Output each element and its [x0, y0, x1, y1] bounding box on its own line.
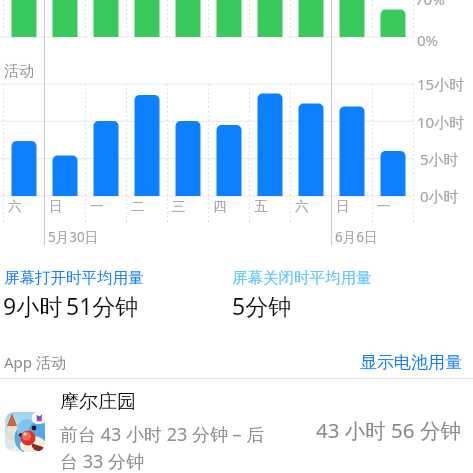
- staticText: 五: [254, 198, 268, 215]
- staticText: 5月30日: [48, 228, 99, 246]
- staticText: 三: [172, 198, 186, 215]
- staticText: 台 33 分钟: [60, 449, 144, 473]
- staticText: 六: [8, 198, 22, 215]
- staticText: 0小时: [420, 186, 459, 206]
- staticText: 日: [336, 198, 350, 215]
- staticText: 0%: [417, 30, 439, 50]
- staticText: 四: [213, 198, 227, 215]
- staticText: 活动: [4, 62, 34, 81]
- staticText: 摩尔庄园: [60, 390, 136, 414]
- staticText: 15小时: [417, 74, 465, 94]
- staticText: 二: [131, 198, 145, 215]
- button[interactable]: 显示电池用量: [302, 342, 462, 382]
- staticText: App 活动: [4, 352, 66, 372]
- staticText: 六: [295, 198, 309, 215]
- staticText: 显示电池用量: [360, 352, 462, 373]
- staticText: 日: [49, 198, 63, 215]
- staticText: 43 小时 56 分钟: [316, 416, 461, 444]
- staticText: 前台 43 小时 23 分钟 – 后: [60, 422, 265, 447]
- staticText: 屏幕打开时平均用量: [4, 268, 144, 288]
- staticText: 70%: [415, 0, 445, 9]
- staticText: 屏幕关闭时平均用量: [232, 268, 372, 288]
- staticText: 10小时: [417, 112, 465, 132]
- button[interactable]: [0, 380, 473, 473]
- staticText: 6月6日: [335, 228, 378, 246]
- staticText: 一: [90, 198, 104, 215]
- staticText: 5分钟: [232, 290, 292, 321]
- staticText: 一: [377, 198, 391, 215]
- staticText: 5小时: [420, 149, 459, 169]
- staticText: 9小时 51分钟: [3, 290, 139, 321]
